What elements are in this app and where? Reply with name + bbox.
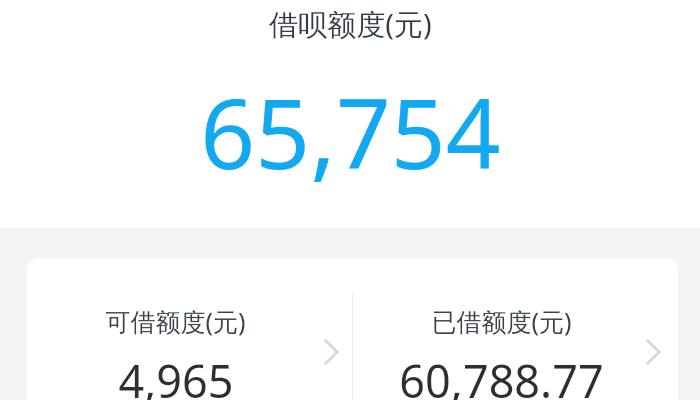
- other: View details: [638, 337, 668, 367]
- staticText: 可借额度(元): [105, 304, 246, 338]
- button[interactable]: 已借额度(元): [353, 258, 678, 400]
- staticText: 65,754: [200, 66, 501, 197]
- button[interactable]: 可借额度(元): [27, 258, 352, 400]
- staticText: 60,788.77: [399, 350, 604, 400]
- other: View details: [316, 337, 346, 367]
- staticText: 借呗额度(元): [269, 4, 432, 44]
- staticText: 4,965: [118, 350, 234, 400]
- staticText: 已借额度(元): [431, 304, 572, 338]
